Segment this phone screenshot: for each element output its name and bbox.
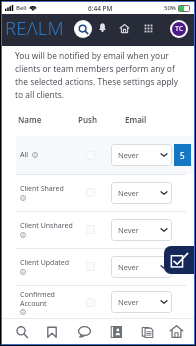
button[interactable]: Push notification toggle: [86, 225, 95, 234]
button[interactable]: Home: [116, 20, 132, 36]
button[interactable]: Confirmed Account: [2, 285, 194, 319]
staticText: Never: [118, 150, 139, 160]
staticText: Client Shared: [20, 184, 64, 194]
button[interactable]: Push notification toggle: [86, 151, 95, 160]
staticText: Push: [78, 114, 98, 125]
staticText: 5: [180, 150, 185, 161]
button[interactable]: Push notification toggle: [86, 188, 95, 197]
button[interactable]: 5: [174, 144, 191, 166]
staticText: Name: [18, 114, 42, 125]
staticText: Email: [125, 114, 147, 125]
staticText: Confirmed Account: [20, 290, 76, 308]
staticText: Bell: [16, 4, 27, 12]
button[interactable]: Client Unshared: [2, 211, 194, 248]
button[interactable]: Contacts: [103, 319, 129, 344]
button[interactable]: Client Shared: [2, 174, 194, 211]
staticText: All: [20, 150, 29, 160]
staticText: Never: [118, 262, 139, 272]
button[interactable]: Never: [111, 256, 172, 278]
button[interactable]: Never: [111, 144, 172, 166]
button[interactable]: Client Updated: [2, 248, 194, 285]
button[interactable]: Notifications: [96, 22, 112, 38]
button[interactable]: All: [2, 136, 194, 174]
staticText: TC: [175, 24, 184, 34]
button[interactable]: Never: [111, 291, 172, 313]
button[interactable]: Search: [74, 20, 92, 38]
button[interactable]: Push notification toggle: [86, 298, 95, 307]
button[interactable]: Search: [9, 319, 35, 344]
staticText: Never: [118, 188, 139, 198]
button[interactable]: Messages: [71, 319, 97, 344]
staticText: Never: [118, 297, 139, 307]
staticText: Client Unshared: [20, 221, 73, 231]
button[interactable]: Home: [163, 319, 189, 344]
staticText: You will be notified by email when your …: [15, 50, 180, 101]
staticText: Never: [118, 225, 139, 235]
button[interactable]: Push notification toggle: [86, 262, 95, 271]
staticText: REΛLM: [5, 15, 64, 40]
button[interactable]: Never: [111, 219, 172, 241]
button[interactable]: Never: [111, 182, 172, 204]
staticText: 50%: [164, 4, 176, 12]
staticText: Client Updated: [20, 258, 70, 268]
button[interactable]: TC: [172, 22, 186, 36]
staticText: 6:44 PM: [88, 4, 113, 13]
button[interactable]: Apps: [140, 20, 156, 36]
button[interactable]: Documents: [134, 319, 160, 344]
button[interactable]: Bookmarks: [39, 319, 65, 344]
button[interactable]: Edit tasks: [164, 246, 194, 274]
